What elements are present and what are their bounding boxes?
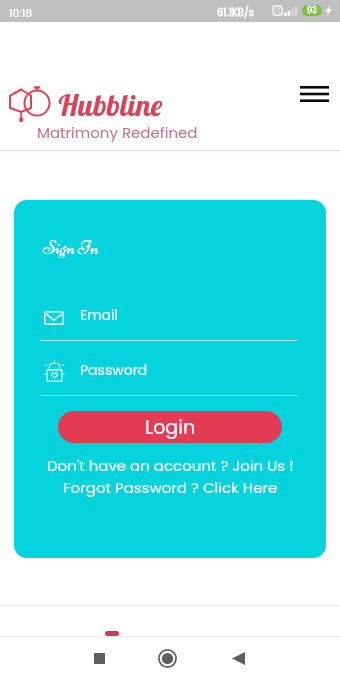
staticText: Matrimony Redefined [37, 122, 198, 143]
staticText: 93 [307, 5, 317, 16]
staticText: Email [80, 305, 118, 325]
staticText: Login [145, 414, 196, 441]
staticText: 61.1KB/s [217, 5, 254, 19]
button[interactable]: Forgot Password ? Click Here [14, 476, 326, 498]
button[interactable]: Don't have an account ? Join Us ! [14, 454, 326, 476]
button[interactable]: Login [58, 411, 282, 443]
button[interactable]: Back [216, 637, 261, 680]
staticText: Hubbline [57, 86, 163, 124]
staticText: Sign In [43, 236, 99, 259]
staticText: Password [80, 360, 148, 380]
button[interactable]: Menu [292, 76, 336, 112]
button[interactable]: Home [145, 637, 190, 680]
button[interactable]: Recent apps [77, 637, 122, 680]
staticText: Forgot Password ? Click Here [63, 477, 278, 498]
staticText: 10:18 [9, 5, 33, 20]
staticText: Don't have an account ? Join Us ! [47, 455, 294, 476]
